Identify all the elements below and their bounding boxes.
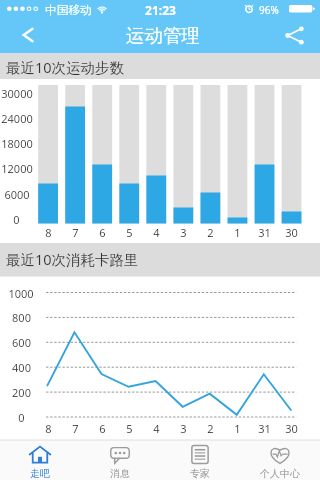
- staticText: 4: [153, 225, 160, 239]
- staticText: 200: [12, 385, 31, 399]
- button[interactable]: Share: [272, 18, 316, 52]
- staticText: 96%: [259, 3, 279, 17]
- staticText: 6000: [4, 187, 30, 201]
- staticText: 7: [72, 421, 79, 435]
- staticText: 21:23: [145, 2, 176, 17]
- staticText: 18000: [1, 136, 33, 150]
- staticText: 30: [285, 225, 298, 239]
- button[interactable]: 走吧: [0, 440, 80, 480]
- button[interactable]: Back: [6, 18, 50, 51]
- staticText: 8: [45, 421, 52, 435]
- staticText: 个人中心: [260, 467, 300, 480]
- button[interactable]: 专家: [160, 440, 240, 480]
- staticText: 消息: [110, 467, 130, 480]
- staticText: 31: [258, 225, 271, 239]
- button[interactable]: 个人中心: [240, 440, 320, 480]
- staticText: 7: [72, 225, 79, 239]
- staticText: 中国移动: [45, 3, 92, 17]
- staticText: 4: [153, 421, 160, 435]
- staticText: 0: [13, 212, 20, 226]
- staticText: 5: [126, 225, 133, 239]
- staticText: 31: [258, 421, 271, 435]
- staticText: 8: [45, 225, 52, 239]
- button[interactable]: 消息: [80, 440, 160, 480]
- staticText: 12000: [1, 161, 33, 175]
- staticText: 800: [12, 310, 31, 324]
- staticText: 1: [234, 421, 241, 435]
- staticText: 30: [285, 421, 298, 435]
- staticText: 24000: [1, 111, 33, 125]
- staticText: 1000: [8, 286, 34, 300]
- staticText: 5: [126, 421, 133, 435]
- staticText: 400: [12, 360, 31, 374]
- staticText: 3: [180, 421, 187, 435]
- staticText: 2: [207, 421, 214, 435]
- staticText: 0: [18, 410, 25, 424]
- staticText: 2: [207, 225, 214, 239]
- staticText: 600: [12, 335, 31, 349]
- staticText: 3: [180, 225, 187, 239]
- staticText: 1: [234, 225, 241, 239]
- staticText: 最近10次消耗卡路里: [6, 249, 139, 269]
- staticText: 6: [99, 421, 106, 435]
- staticText: 最近10次运动步数: [6, 57, 125, 75]
- staticText: 走吧: [30, 467, 50, 480]
- staticText: 6: [99, 225, 106, 239]
- staticText: 30000: [1, 86, 33, 100]
- staticText: 专家: [190, 467, 210, 480]
- staticText: 运动管理: [126, 24, 200, 46]
